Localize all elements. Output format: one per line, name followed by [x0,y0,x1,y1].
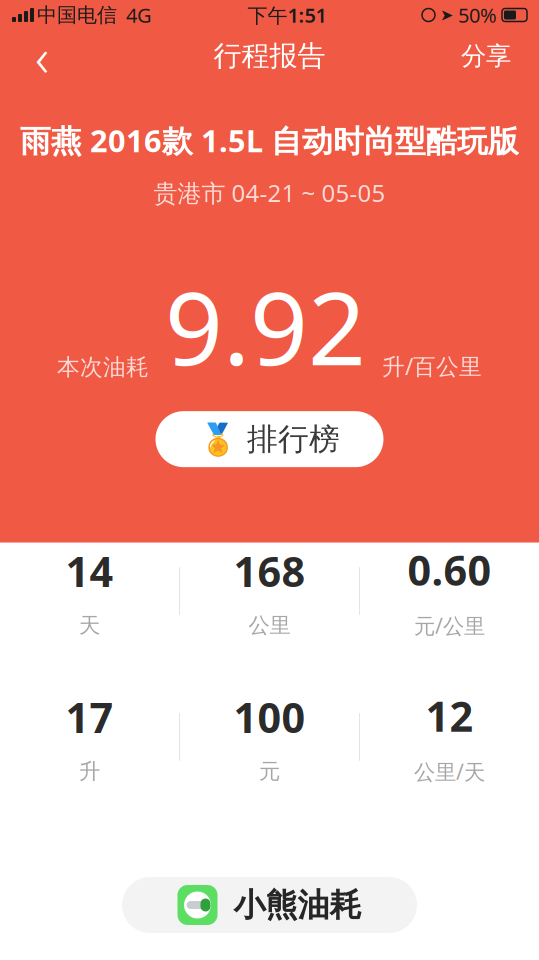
staticText: 0.60 [407,542,491,597]
staticText: 小熊油耗 [233,885,361,925]
staticText: 中国电信 [37,3,117,27]
staticText: 分享 [461,40,511,71]
staticText: 14 [65,543,113,598]
staticText: 公里 [248,612,290,638]
staticText: 50% [458,2,497,28]
staticText: 168 [233,543,305,598]
staticText: 升/百公里 [382,351,482,381]
staticText: 4G [126,2,152,28]
staticText: 升 [79,758,100,784]
staticText: ‹ [35,21,49,91]
staticText: 元 [259,758,280,784]
staticText: 100 [233,689,305,744]
staticText: 排行榜 [247,420,340,458]
staticText: 17 [65,689,113,744]
staticText: ➤ [440,6,453,24]
staticText: 12 [425,688,473,743]
staticText: 贵港市 04-21 ~ 05-05 [153,177,385,209]
button[interactable]: 小熊油耗 [122,877,417,933]
staticText: 下午1:51 [247,2,326,28]
button[interactable]: 🏅 [155,411,383,467]
staticText: 本次油耗 [57,353,149,381]
button[interactable]: 分享 [445,31,527,81]
button[interactable]: 返回 [12,31,72,81]
staticText: 公里/天 [414,757,485,786]
staticText: 🏅 [199,422,237,457]
staticText: 元/公里 [414,611,485,640]
staticText: 行程报告 [213,39,325,73]
staticText: 雨燕 2016款 1.5L 自动时尚型酷玩版 [20,120,519,161]
staticText: 天 [79,612,100,638]
staticText: 9.92 [165,259,366,393]
